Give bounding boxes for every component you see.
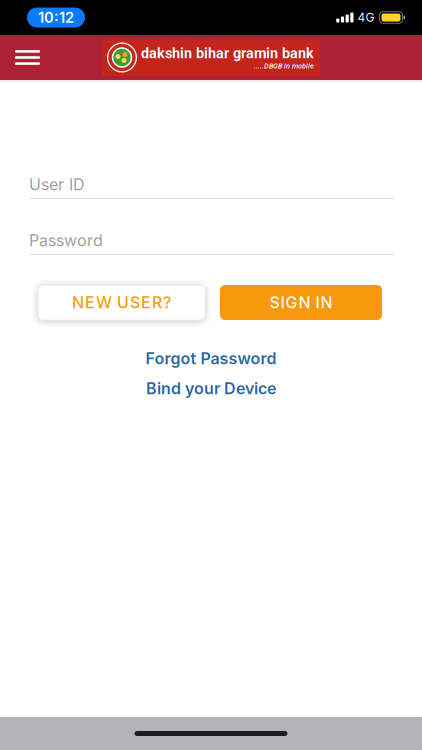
button[interactable]: Bind your Device [146, 379, 276, 398]
button[interactable]: S I G N I N [220, 285, 382, 320]
staticText: N E W U S E R ? [72, 293, 171, 312]
staticText: Password [29, 231, 103, 250]
staticText: .....DBGB in mobile [254, 62, 314, 70]
button[interactable]: N E W U S E R ? [38, 285, 205, 320]
staticText: User ID [29, 175, 85, 194]
staticText: Bind your Device [146, 379, 276, 398]
staticText: dakshin bihar gramin bank [141, 45, 314, 62]
staticText: S I G N I N [269, 293, 332, 312]
staticText: Forgot Password [145, 349, 276, 368]
button[interactable]: Password [0, 231, 422, 255]
staticText: 4G [357, 10, 374, 25]
button[interactable]: Forgot Password [145, 349, 276, 368]
button[interactable]: Menu [0, 42, 40, 73]
staticText: 10:12 [38, 9, 74, 26]
button[interactable]: User ID [0, 175, 422, 199]
